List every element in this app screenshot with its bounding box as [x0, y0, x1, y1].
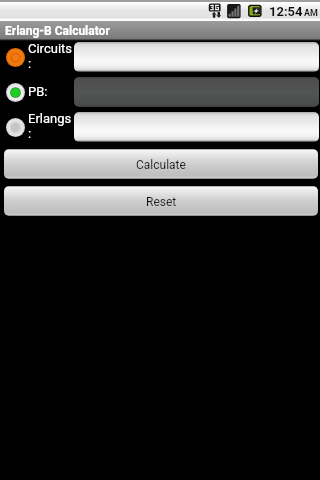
staticText: Circuits:	[28, 41, 74, 71]
staticText: Calculate	[136, 158, 186, 172]
button[interactable]: Erlangs: input field	[74, 112, 319, 142]
button[interactable]: Erlangs:	[3, 112, 73, 142]
button[interactable]: Circuits:	[3, 42, 73, 72]
staticText: AM	[304, 8, 318, 19]
button[interactable]: PB: input field	[74, 77, 319, 107]
staticText: PB:	[28, 84, 48, 99]
staticText: 12:54	[269, 4, 303, 19]
button[interactable]: Reset	[4, 186, 318, 216]
button[interactable]: Calculate	[4, 149, 318, 179]
button[interactable]: PB:	[3, 77, 73, 107]
staticText: Erlang-B Calculator	[5, 24, 110, 38]
button[interactable]: Circuits: input field	[74, 42, 319, 72]
staticText: Erlangs:	[28, 111, 74, 141]
staticText: Reset	[146, 195, 177, 209]
